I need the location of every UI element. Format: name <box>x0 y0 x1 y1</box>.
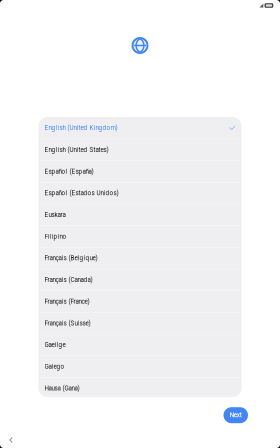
staticText: Filipino <box>44 233 66 240</box>
button[interactable]: Français (Canada) <box>38 269 241 290</box>
button[interactable]: English (United States) <box>38 139 241 160</box>
staticText: Galego <box>44 363 64 370</box>
staticText: Español (España) <box>44 168 93 175</box>
staticText: Español (Estados Unidos) <box>44 189 118 197</box>
staticText: Français (Canada) <box>44 276 92 283</box>
button[interactable]: Back <box>7 435 15 445</box>
button[interactable]: English (United Kingdom) <box>38 117 241 139</box>
button[interactable]: Galego <box>38 355 241 377</box>
button[interactable]: Filipino <box>38 225 241 247</box>
staticText: Next <box>230 411 242 419</box>
button[interactable]: Euskara <box>38 204 241 225</box>
button[interactable]: Français (Suisse) <box>38 312 241 334</box>
button[interactable]: Hausa (Gana) <box>38 377 241 399</box>
button[interactable]: Français (Belgique) <box>38 247 241 269</box>
staticText: Français (Belgique) <box>44 254 97 262</box>
button[interactable]: Español (Estados Unidos) <box>38 182 241 204</box>
button[interactable]: Français (France) <box>38 290 241 312</box>
button[interactable]: Gaeilge <box>38 334 241 355</box>
staticText: English (United States) <box>44 146 108 153</box>
button[interactable]: Español (España) <box>38 160 241 182</box>
staticText: Français (France) <box>44 298 89 305</box>
staticText: English (United Kingdom) <box>44 124 117 131</box>
staticText: Hausa (Gana) <box>44 385 79 392</box>
staticText: Euskara <box>44 211 65 218</box>
staticText: Français (Suisse) <box>44 320 90 327</box>
button[interactable]: Next <box>223 407 248 423</box>
staticText: Gaeilge <box>44 341 65 349</box>
